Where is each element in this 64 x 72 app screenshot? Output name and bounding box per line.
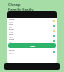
staticText: Gas <box>9 23 13 26</box>
staticText: Fri <box>9 41 12 43</box>
button[interactable]: Total <box>7 49 57 54</box>
button[interactable]: Save <box>7 38 57 43</box>
staticText: Gift <box>9 33 14 36</box>
staticText: Cheap <box>8 2 21 7</box>
staticText: Family Easily <box>8 7 34 12</box>
staticText: Sum <box>9 52 13 54</box>
button[interactable]: Rent <box>7 28 57 33</box>
staticText: Rent <box>9 28 15 31</box>
staticText: Save <box>9 38 15 41</box>
button[interactable]: Gift <box>7 33 57 38</box>
staticText: Food <box>9 18 15 21</box>
staticText: Thu <box>9 36 13 38</box>
button[interactable]: Food <box>7 18 57 23</box>
staticText: Wed <box>9 31 13 33</box>
staticText: Total <box>9 49 15 52</box>
staticText: Tue <box>9 26 13 28</box>
button[interactable]: Gas <box>7 23 57 28</box>
staticText: Add <box>30 44 35 47</box>
button[interactable]: Add <box>8 43 56 48</box>
staticText: Mon <box>9 21 14 23</box>
